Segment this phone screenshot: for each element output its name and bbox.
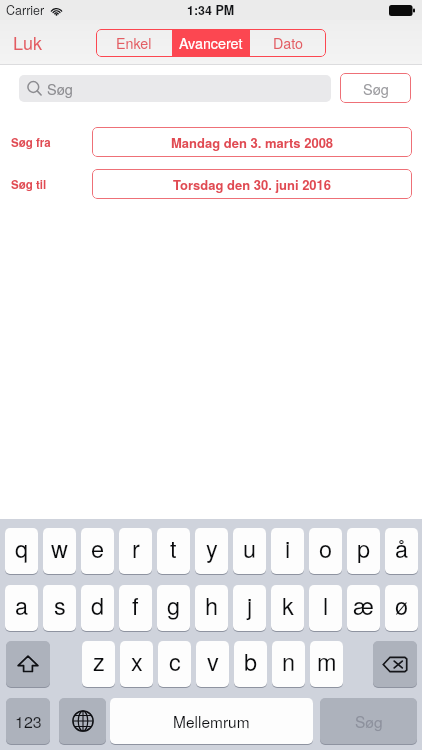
staticText: 123 (15, 710, 42, 733)
staticText: a (15, 588, 29, 622)
button[interactable]: Avanceret (173, 29, 249, 57)
button[interactable]: Numbers (6, 698, 50, 744)
button[interactable]: Søg (320, 698, 417, 744)
staticText: Avanceret (179, 33, 243, 53)
staticText: p (357, 531, 371, 565)
button[interactable]: v (196, 641, 229, 687)
staticText: Carrier (6, 1, 45, 19)
staticText: j (247, 588, 253, 622)
button[interactable]: g (157, 585, 190, 631)
staticText: q (15, 531, 29, 565)
button[interactable]: Dato (250, 29, 326, 57)
staticText: å (395, 531, 409, 565)
staticText: f (132, 588, 139, 622)
staticText: Søg til (11, 176, 92, 192)
button[interactable]: d (81, 585, 114, 631)
button[interactable]: i (271, 528, 304, 574)
button[interactable]: Mandag den 3. marts 2008 (92, 127, 412, 157)
staticText: Søg (363, 78, 389, 99)
staticText: Mellemrum (173, 710, 250, 732)
staticText: Luk (13, 29, 42, 55)
button[interactable]: æ (347, 585, 380, 631)
staticText: i (285, 531, 291, 565)
staticText: Søg (355, 710, 383, 732)
button[interactable]: x (120, 641, 153, 687)
button[interactable]: Søg (19, 75, 331, 102)
staticText: x (131, 644, 143, 678)
button[interactable]: e (81, 528, 114, 574)
staticText: r (132, 531, 140, 565)
staticText: v (207, 644, 219, 678)
staticText: s (54, 588, 66, 622)
button[interactable]: k (271, 585, 304, 631)
button[interactable]: w (43, 528, 76, 574)
staticText: Søg fra (11, 134, 92, 150)
staticText: æ (353, 588, 374, 622)
button[interactable]: y (195, 528, 228, 574)
staticText: ø (395, 588, 409, 622)
staticText: g (167, 588, 181, 622)
button[interactable]: Søg (340, 73, 411, 103)
button[interactable]: Mellemrum (110, 698, 313, 744)
staticText: t (170, 531, 177, 565)
button[interactable]: r (119, 528, 152, 574)
staticText: l (323, 588, 329, 622)
button[interactable]: Luk (13, 30, 42, 56)
button[interactable]: u (233, 528, 266, 574)
button[interactable]: z (82, 641, 115, 687)
staticText: 1:34 PM (187, 1, 235, 19)
button[interactable]: c (158, 641, 191, 687)
button[interactable]: n (272, 641, 305, 687)
button[interactable]: Enkel (96, 29, 172, 57)
button[interactable]: h (195, 585, 228, 631)
button[interactable]: b (234, 641, 267, 687)
staticText: u (243, 531, 257, 565)
staticText: Mandag den 3. marts 2008 (171, 133, 334, 152)
button[interactable]: s (43, 585, 76, 631)
staticText: Dato (273, 33, 304, 53)
staticText: y (206, 531, 218, 565)
button[interactable]: Torsdag den 30. juni 2016 (92, 169, 412, 199)
staticText: n (282, 644, 296, 678)
button[interactable]: ø (385, 585, 418, 631)
staticText: b (244, 644, 258, 678)
button[interactable]: m (310, 641, 343, 687)
staticText: z (93, 644, 105, 678)
button[interactable]: Backspace (373, 641, 417, 687)
button[interactable]: Change keyboard (59, 698, 106, 744)
staticText: o (319, 531, 333, 565)
staticText: w (51, 531, 68, 565)
button[interactable]: a (5, 585, 38, 631)
button[interactable]: å (385, 528, 418, 574)
button[interactable]: f (119, 585, 152, 631)
staticText: Enkel (116, 33, 152, 53)
button[interactable]: q (5, 528, 38, 574)
staticText: Torsdag den 30. juni 2016 (173, 175, 332, 194)
staticText: d (91, 588, 105, 622)
staticText: Søg (47, 78, 73, 99)
button[interactable]: Shift (6, 641, 50, 687)
staticText: m (317, 644, 337, 678)
staticText: k (282, 588, 294, 622)
button[interactable]: j (233, 585, 266, 631)
button[interactable]: t (157, 528, 190, 574)
staticText: h (205, 588, 219, 622)
button[interactable]: o (309, 528, 342, 574)
button[interactable]: l (309, 585, 342, 631)
staticText: c (169, 644, 181, 678)
button[interactable]: p (347, 528, 380, 574)
staticText: e (91, 531, 105, 565)
